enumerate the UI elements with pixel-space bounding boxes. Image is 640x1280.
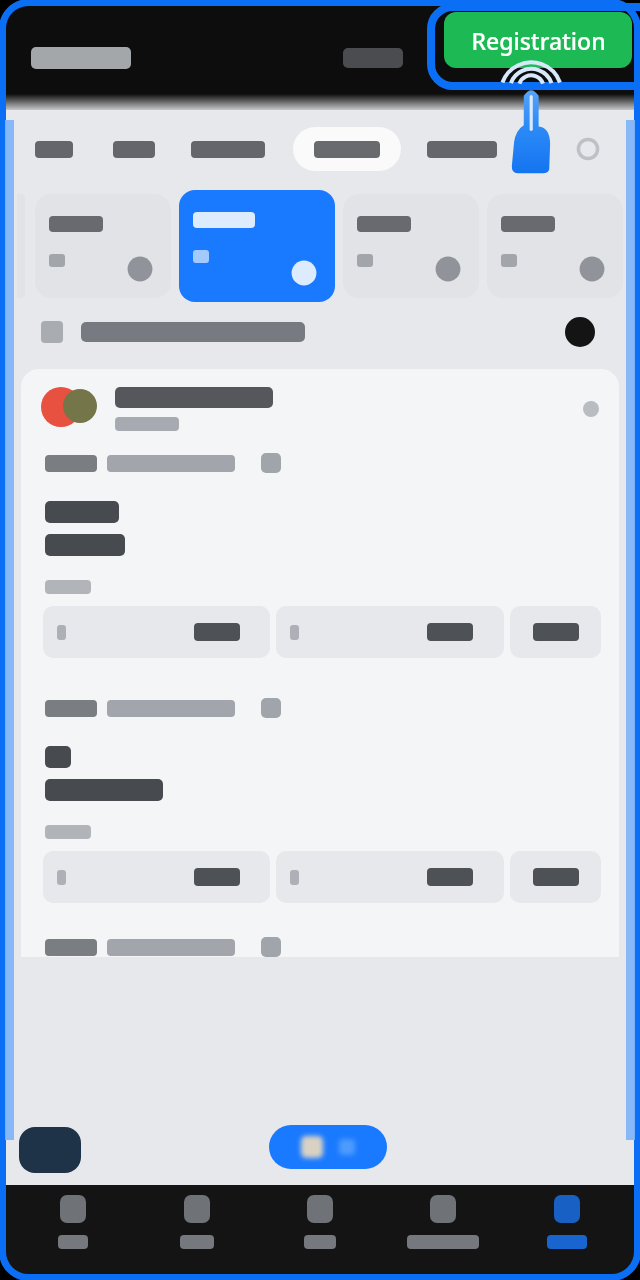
other: Tap here xyxy=(488,58,578,178)
button[interactable] xyxy=(427,127,497,171)
button[interactable] xyxy=(179,190,335,302)
button[interactable]: Navigation tab xyxy=(142,1195,252,1275)
button[interactable] xyxy=(510,606,601,658)
button[interactable] xyxy=(276,606,504,658)
button[interactable] xyxy=(113,127,155,171)
button[interactable] xyxy=(21,369,619,957)
button[interactable]: Sports tab xyxy=(512,1195,622,1275)
button[interactable] xyxy=(191,127,265,171)
button[interactable] xyxy=(35,194,171,298)
button[interactable]: Registration xyxy=(444,12,632,68)
button[interactable] xyxy=(43,606,270,658)
staticText: Registration xyxy=(471,25,606,56)
button[interactable] xyxy=(43,851,270,903)
button[interactable] xyxy=(35,127,73,171)
button[interactable]: Navigation tab xyxy=(265,1195,375,1275)
button[interactable] xyxy=(276,851,504,903)
button[interactable] xyxy=(343,194,479,298)
button[interactable] xyxy=(17,317,623,347)
button[interactable]: Navigation tab xyxy=(388,1195,498,1275)
button[interactable]: Navigation tab xyxy=(18,1195,128,1275)
button[interactable] xyxy=(343,48,403,68)
button[interactable] xyxy=(293,127,401,171)
button[interactable] xyxy=(510,851,601,903)
button[interactable] xyxy=(487,194,623,298)
button[interactable] xyxy=(269,1125,387,1169)
button[interactable]: Search xyxy=(571,132,605,166)
